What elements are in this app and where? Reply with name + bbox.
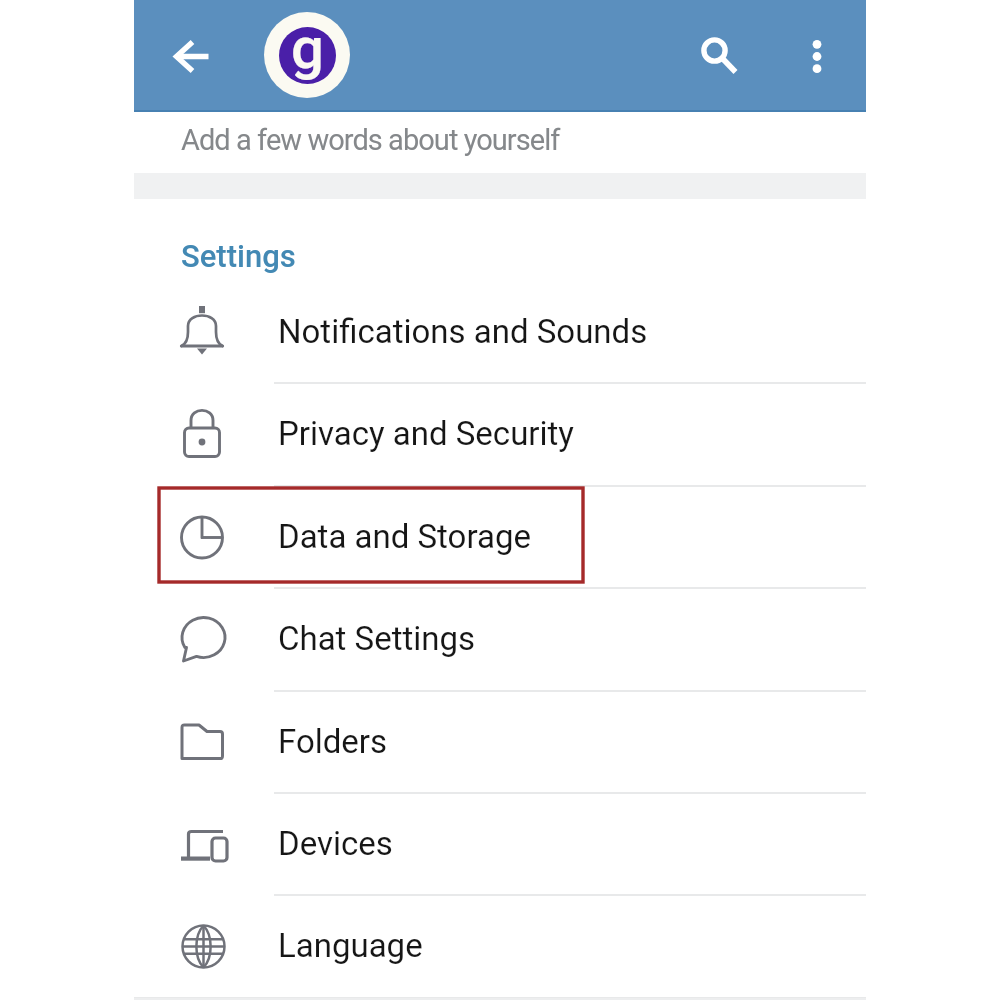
button[interactable]: Profile photo — [264, 12, 350, 98]
staticText: Data and Storage — [278, 517, 531, 556]
button[interactable]: Search — [686, 27, 742, 83]
staticText: g — [291, 14, 324, 82]
button[interactable]: Devices — [134, 792, 866, 894]
button[interactable]: Language — [134, 894, 866, 997]
button[interactable]: Chat Settings — [134, 587, 866, 690]
staticText: Chat Settings — [278, 619, 476, 658]
staticText: Privacy and Security — [278, 414, 574, 453]
button[interactable]: Back — [163, 27, 219, 83]
staticText: Settings — [181, 238, 296, 274]
button[interactable]: Folders — [134, 690, 866, 792]
button[interactable]: More options — [789, 27, 845, 83]
staticText: Devices — [278, 824, 393, 863]
button[interactable]: Data and Storage — [134, 485, 866, 587]
staticText: Add a few words about yourself — [181, 123, 560, 157]
button[interactable]: Privacy and Security — [134, 382, 866, 485]
staticText: Folders — [278, 722, 388, 761]
staticText: Notifications and Sounds — [278, 312, 648, 351]
button[interactable]: Notifications and Sounds — [134, 280, 866, 382]
staticText: Language — [278, 926, 423, 965]
